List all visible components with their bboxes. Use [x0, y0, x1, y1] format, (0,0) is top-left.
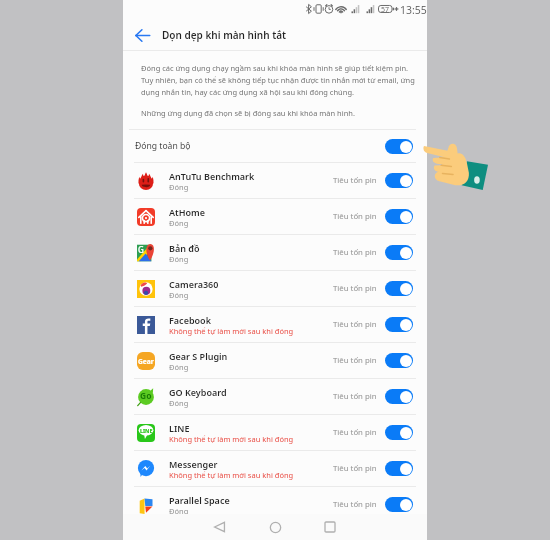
staticText: AnTuTu Benchmark	[169, 170, 255, 182]
button[interactable]: Home	[262, 514, 288, 540]
staticText: LINE	[140, 427, 153, 434]
staticText: Dọn dẹp khi màn hình tắt	[162, 28, 287, 42]
staticText: LINE	[169, 422, 190, 434]
button[interactable]: Back	[206, 514, 232, 540]
button[interactable]: Đóng toàn bộ	[123, 130, 427, 162]
button[interactable]: Messenger	[123, 451, 427, 486]
staticText: Tiêu tốn pin	[333, 175, 377, 186]
staticText: Đóng các ứng dụng chạy ngầm sau khi khóa…	[141, 63, 415, 97]
staticText: Đóng	[169, 398, 189, 408]
staticText: Tiêu tốn pin	[333, 391, 377, 402]
staticText: Tiêu tốn pin	[333, 355, 377, 366]
staticText: Facebook	[169, 314, 211, 326]
staticText: Không thể tự làm mới sau khi đóng	[169, 326, 294, 336]
staticText: Messenger	[169, 458, 218, 470]
staticText: Không thể tự làm mới sau khi đóng	[169, 470, 294, 480]
button[interactable]: LINE	[123, 415, 427, 450]
button[interactable]: Camera360	[123, 271, 427, 306]
button[interactable]: Back	[130, 24, 152, 46]
staticText: Tiêu tốn pin	[333, 319, 377, 330]
staticText: Tiêu tốn pin	[333, 283, 377, 294]
staticText: Không thể tự làm mới sau khi đóng	[169, 434, 294, 444]
button[interactable]: Parallel Space	[123, 487, 427, 522]
button[interactable]: Toggle	[385, 281, 413, 296]
staticText: Tiêu tốn pin	[333, 463, 377, 474]
button[interactable]: Toggle	[385, 173, 413, 188]
staticText: Đóng	[169, 218, 189, 228]
button[interactable]: Toggle	[385, 209, 413, 224]
staticText: Gear	[138, 357, 154, 366]
staticText: Tiêu tốn pin	[333, 499, 377, 510]
staticText: Đóng	[169, 506, 189, 516]
staticText: Parallel Space	[169, 494, 230, 506]
button[interactable]: AtHome	[123, 199, 427, 234]
button[interactable]: Toggle	[385, 139, 413, 154]
staticText: 13:55	[400, 3, 427, 17]
staticText: Tiêu tốn pin	[333, 211, 377, 222]
staticText: Đóng	[169, 290, 189, 300]
staticText: Đóng	[169, 362, 189, 372]
button[interactable]: Go	[123, 379, 427, 414]
button[interactable]: G	[123, 235, 427, 270]
staticText: 57	[381, 5, 390, 15]
button[interactable]: Toggle	[385, 245, 413, 260]
staticText: G	[138, 244, 144, 255]
button[interactable]: Gear	[123, 343, 427, 378]
button[interactable]: Toggle	[385, 425, 413, 440]
staticText: Đóng	[169, 254, 189, 264]
button[interactable]: Facebook	[123, 307, 427, 342]
staticText: AtHome	[169, 206, 205, 218]
button[interactable]: Toggle	[385, 317, 413, 332]
staticText: Tiêu tốn pin	[333, 247, 377, 258]
button[interactable]: AnTuTu Benchmark	[123, 163, 427, 198]
button[interactable]: Toggle	[385, 389, 413, 404]
staticText: Đóng toàn bộ	[135, 140, 191, 152]
staticText: Những ứng dụng đã chọn sẽ bị đóng sau kh…	[141, 108, 355, 118]
staticText: Bản đồ	[169, 242, 200, 254]
button[interactable]: Toggle	[385, 353, 413, 368]
button[interactable]: Toggle	[385, 497, 413, 512]
staticText: Đóng	[169, 182, 189, 192]
staticText: Tiêu tốn pin	[333, 427, 377, 438]
staticText: Gear S Plugin	[169, 350, 228, 362]
staticText: Camera360	[169, 278, 219, 290]
staticText: GO Keyboard	[169, 386, 227, 398]
staticText: Go	[140, 390, 152, 402]
button[interactable]: Toggle	[385, 461, 413, 476]
button[interactable]: Recents	[317, 514, 343, 540]
